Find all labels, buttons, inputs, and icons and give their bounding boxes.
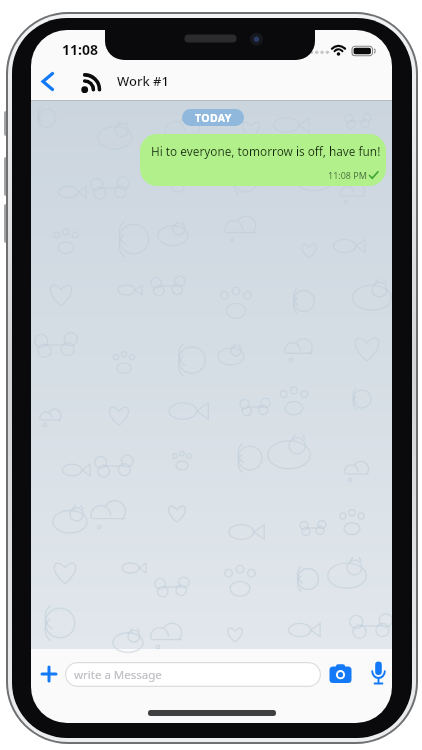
staticText: TODAY (195, 111, 232, 125)
button[interactable] (37, 68, 61, 98)
staticText: Hi to everyone, tomorrow is off, have fu… (151, 143, 381, 159)
button[interactable] (328, 662, 353, 686)
button[interactable] (371, 660, 386, 687)
button[interactable]: write a Message (65, 662, 321, 687)
button[interactable]: TODAY (182, 109, 244, 126)
staticText: 11:08 PM (328, 169, 367, 181)
staticText: Work #1 (117, 72, 169, 90)
button[interactable]: Work #1 (77, 68, 207, 98)
button[interactable]: Hi to everyone, tomorrow is off, have fu… (140, 134, 386, 186)
staticText: write a Message (74, 667, 162, 683)
button[interactable] (38, 663, 60, 685)
staticText: 11:08 (62, 40, 98, 59)
